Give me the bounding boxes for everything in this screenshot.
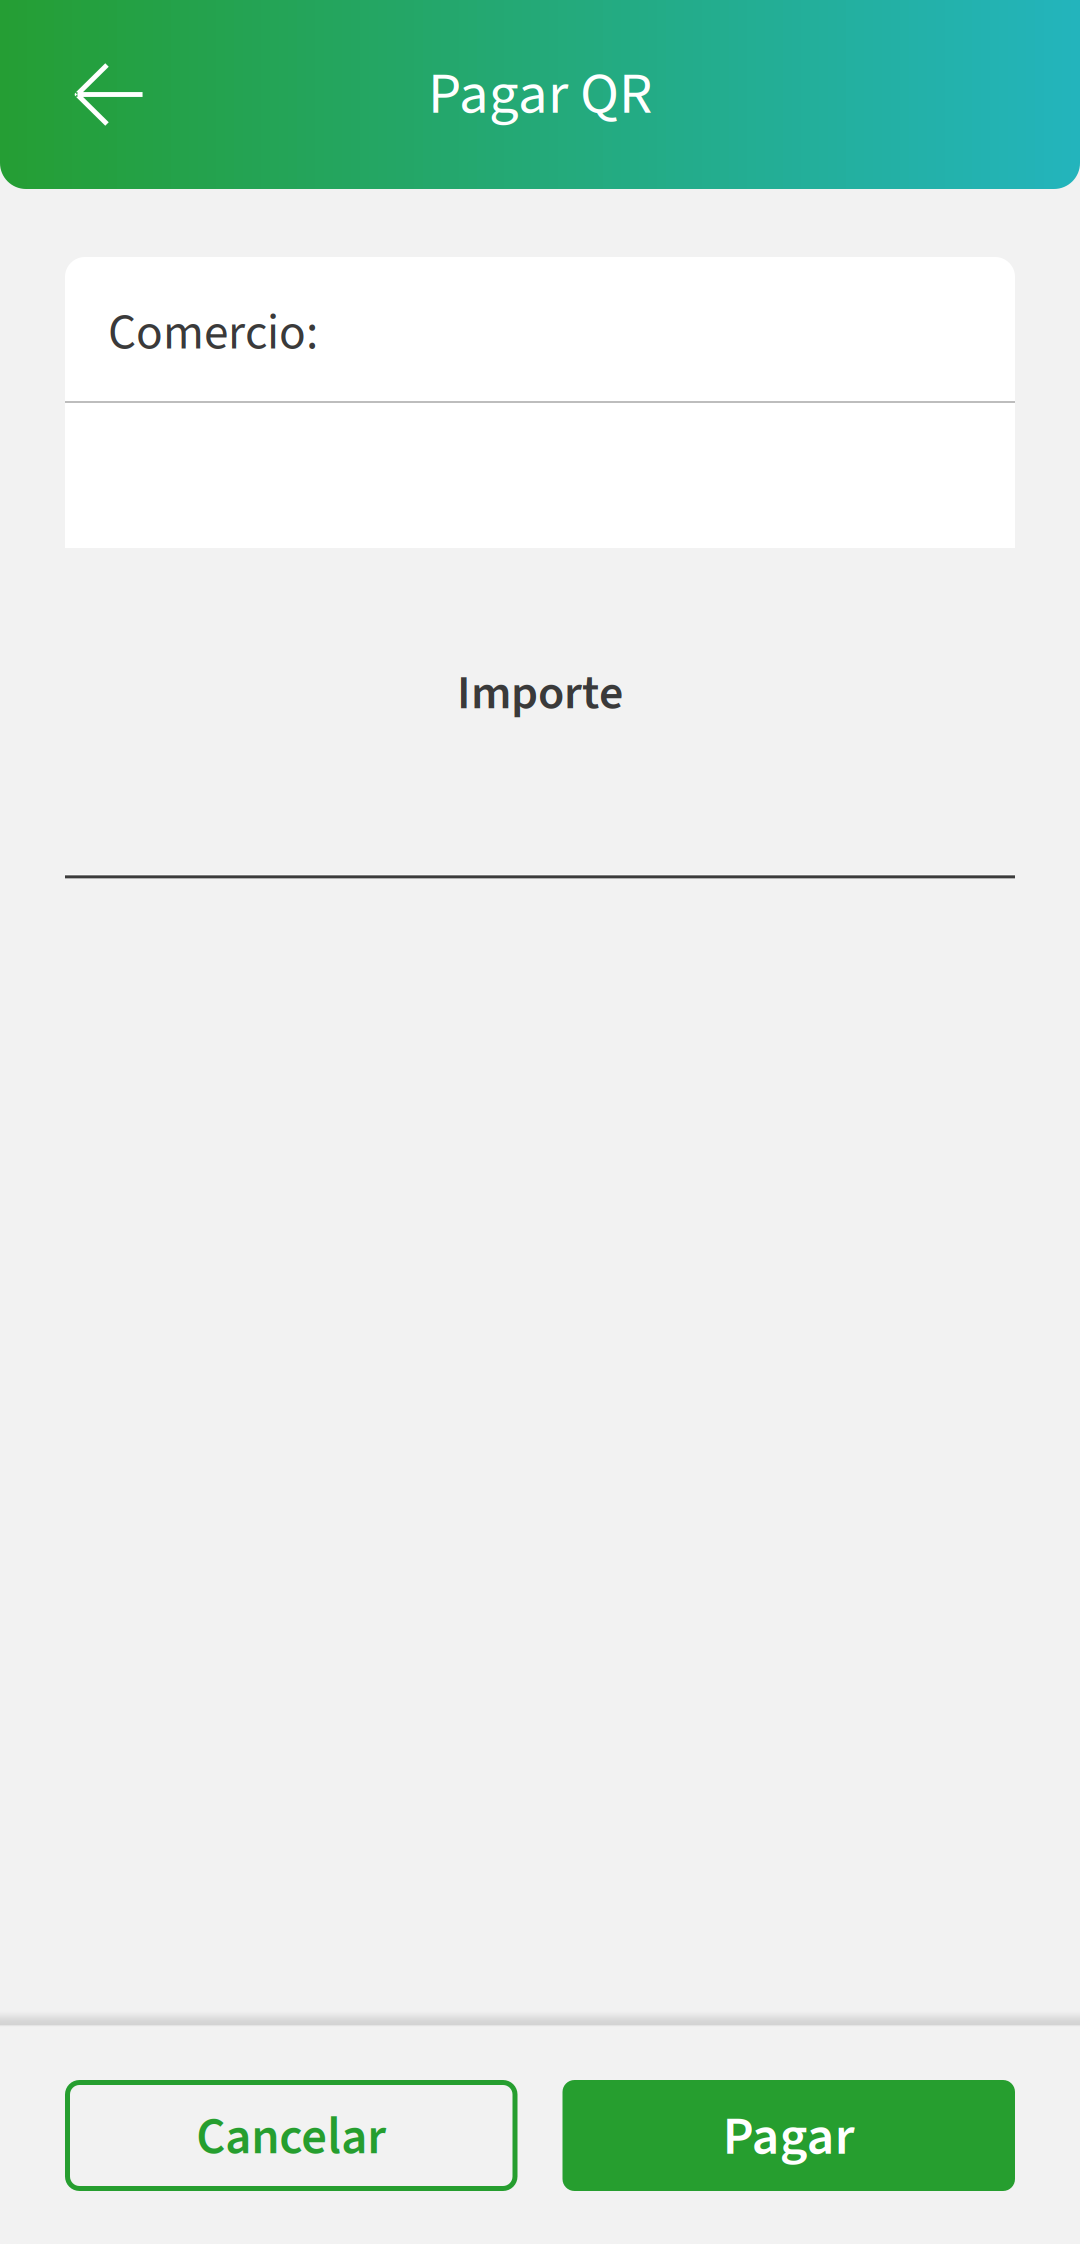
staticText: Comercio: (108, 298, 318, 368)
button[interactable]: Comercio (65, 257, 1015, 548)
button[interactable]: Cancelar (65, 2080, 517, 2191)
button[interactable]: Importe (65, 548, 1015, 878)
staticText: Importe (457, 659, 623, 727)
staticText: Pagar (723, 2099, 855, 2175)
button[interactable]: Back (0, 0, 210, 189)
button[interactable]: Pagar (562, 2080, 1015, 2191)
staticText: Pagar QR (428, 53, 652, 136)
staticText: Cancelar (196, 2101, 386, 2173)
